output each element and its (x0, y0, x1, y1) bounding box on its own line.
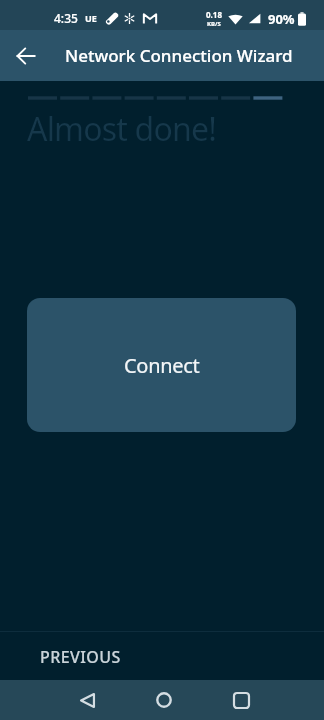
staticText: Connect (124, 352, 200, 379)
staticText: KB/S (207, 20, 221, 28)
staticText: Almost done! (27, 107, 217, 151)
staticText: 0.18 (206, 9, 222, 20)
button[interactable]: Connect (27, 298, 296, 432)
button[interactable]: Navigate up (0, 30, 52, 81)
staticText: UE (85, 12, 97, 24)
staticText: 90% (268, 10, 295, 28)
staticText: Network Connection Wizard (65, 44, 293, 67)
staticText: 4:35 (54, 10, 78, 26)
button[interactable]: Recent apps (213, 680, 269, 720)
button[interactable]: PREVIOUS (29, 638, 132, 676)
button[interactable]: Home (136, 680, 192, 720)
staticText: PREVIOUS (40, 646, 121, 668)
button[interactable]: Back (59, 680, 115, 720)
